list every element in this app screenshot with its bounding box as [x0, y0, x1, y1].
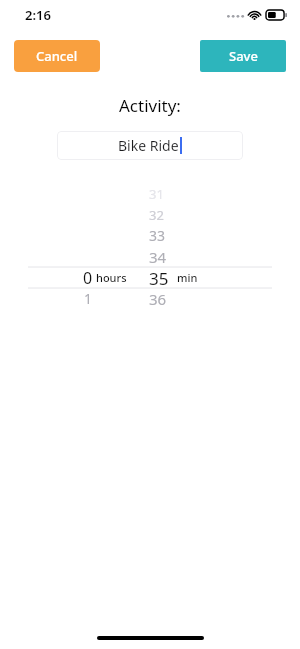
staticText: Save: [229, 47, 258, 65]
staticText: 1: [84, 289, 93, 308]
staticText: hours: [96, 270, 127, 285]
staticText: 36: [149, 289, 167, 309]
button[interactable]: Save: [200, 40, 286, 72]
staticText: 2:16: [25, 6, 51, 24]
staticText: Bike Ride: [118, 136, 179, 155]
staticText: min: [177, 270, 198, 285]
staticText: 34: [149, 247, 167, 267]
staticText: 35: [149, 267, 169, 288]
staticText: 31: [149, 185, 164, 203]
staticText: 32: [149, 206, 164, 224]
staticText: Cancel: [36, 47, 78, 65]
staticText: Activity:: [119, 94, 181, 117]
staticText: 0: [83, 267, 93, 288]
staticText: 33: [149, 226, 166, 245]
button[interactable]: Cancel: [14, 40, 100, 72]
button[interactable]: Bike Ride: [57, 131, 243, 160]
